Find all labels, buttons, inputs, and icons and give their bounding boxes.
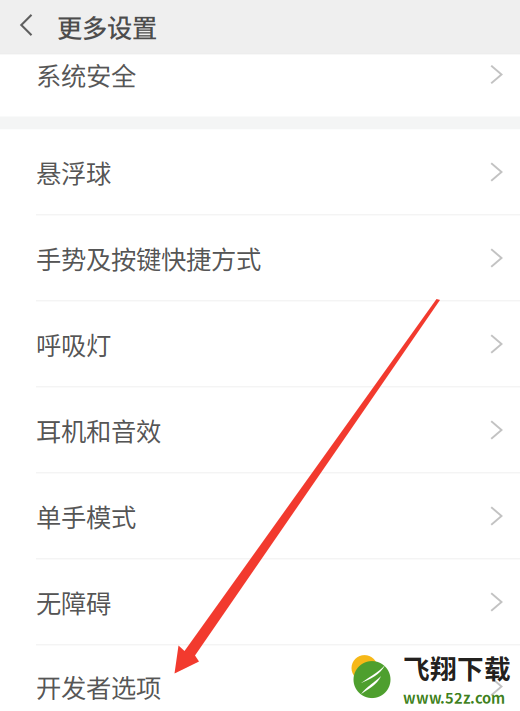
staticText: 呼吸灯 — [36, 326, 111, 362]
staticText: 手势及按键快捷方式 — [36, 240, 261, 276]
staticText: 单手模式 — [36, 498, 136, 534]
staticText: 悬浮球 — [36, 154, 111, 190]
button[interactable]: 系统安全 — [0, 54, 520, 116]
button[interactable]: 呼吸灯 — [0, 301, 520, 386]
button[interactable]: 悬浮球 — [0, 129, 520, 214]
button[interactable]: 手势及按键快捷方式 — [0, 215, 520, 300]
button[interactable]: 开发者选项 — [0, 645, 520, 711]
button[interactable]: 耳机和音效 — [0, 387, 520, 472]
staticText: 飞翔下载 — [403, 648, 511, 687]
staticText: 开发者选项 — [36, 668, 161, 705]
staticText: 系统安全 — [36, 56, 136, 93]
staticText: www.52z.com — [403, 687, 505, 708]
button[interactable]: Back — [6, 0, 47, 53]
button[interactable]: 单手模式 — [0, 473, 520, 558]
staticText: 耳机和音效 — [36, 412, 161, 448]
staticText: 更多设置 — [57, 8, 157, 45]
staticText: 无障碍 — [36, 584, 111, 620]
button[interactable]: 无障碍 — [0, 559, 520, 644]
